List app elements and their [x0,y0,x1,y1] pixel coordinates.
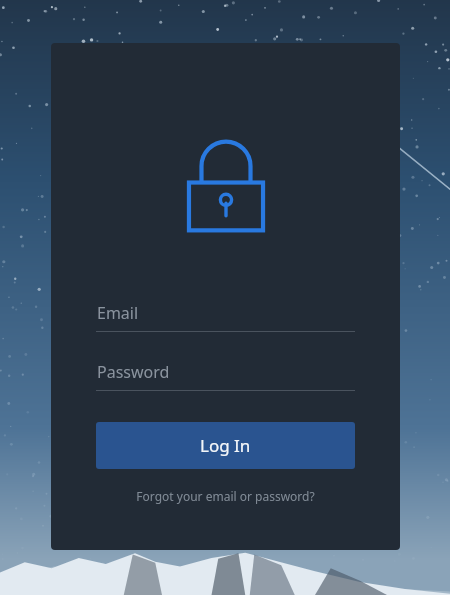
button[interactable]: Email [96,294,355,332]
button[interactable]: Forgot your email or password? [96,485,355,507]
staticText: Password [97,361,170,383]
staticText: Log In [200,434,251,457]
button[interactable]: Password [96,353,355,391]
button[interactable]: Log In [96,422,355,469]
staticText: Email [97,302,139,324]
staticText: Forgot your email or password? [136,488,315,504]
